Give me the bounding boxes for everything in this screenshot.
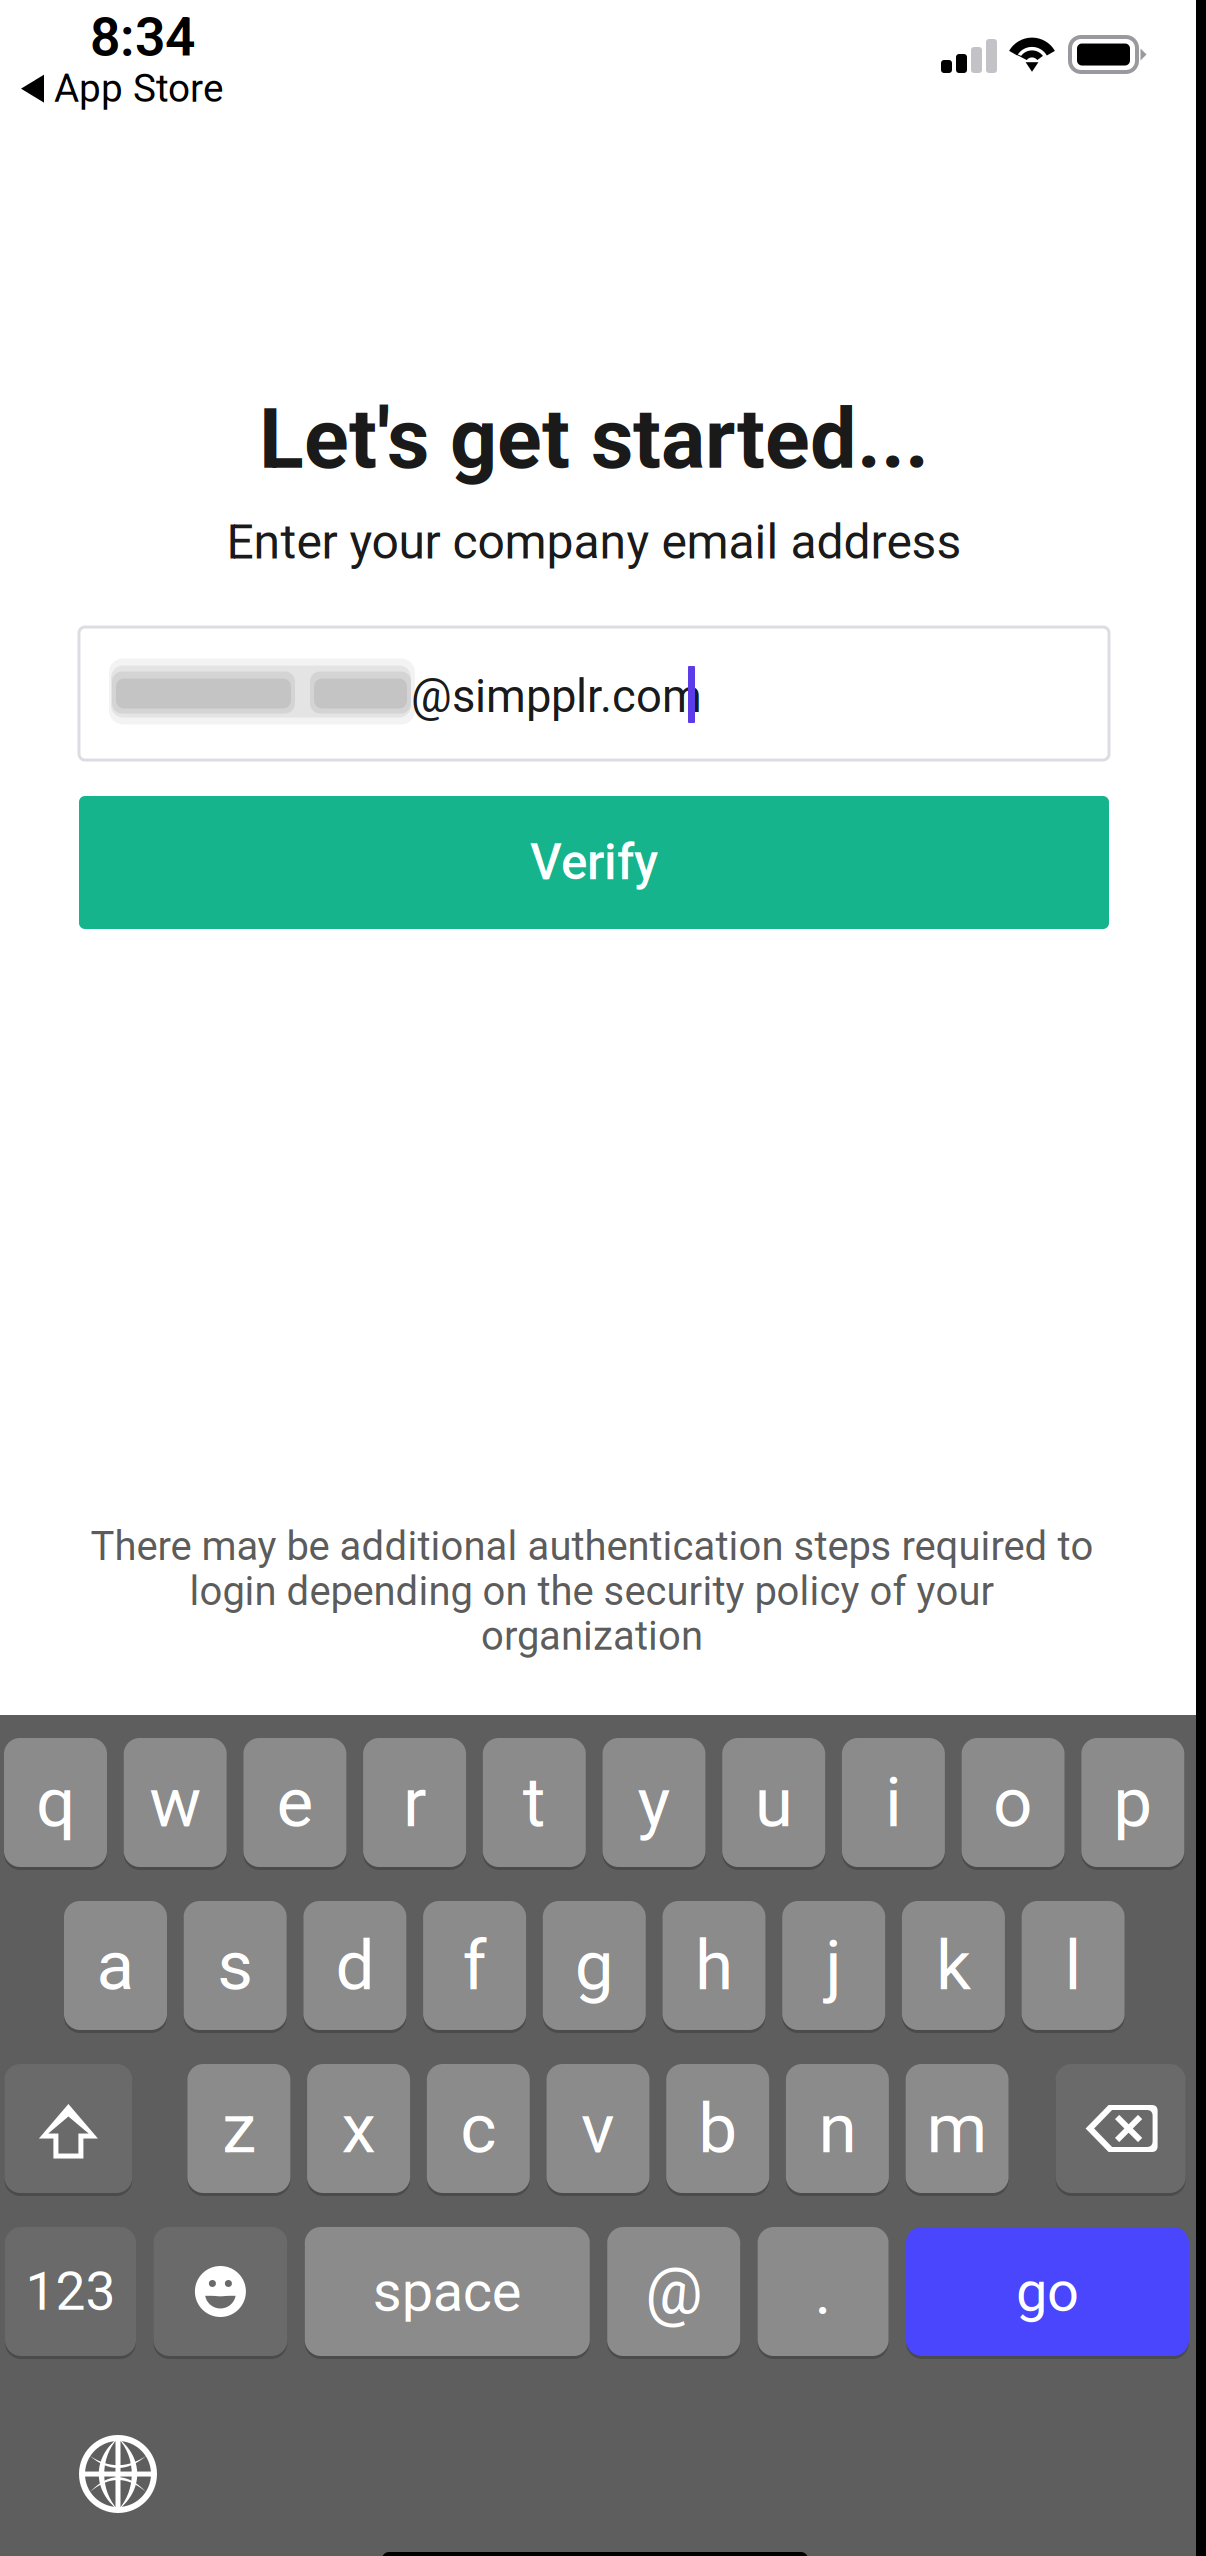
staticText: h [695,1925,733,2006]
staticText: g [575,1925,614,2006]
button[interactable]: z [187,2064,290,2193]
staticText: . [815,2254,832,2329]
staticText: s [217,1925,253,2006]
button[interactable]: y [602,1738,705,1867]
staticText: w [149,1762,201,1843]
staticText: a [96,1925,134,2006]
button[interactable]: 123 [5,2227,136,2356]
button[interactable]: a [64,1901,167,2030]
staticText: 123 [25,2260,115,2323]
button[interactable]: v [546,2064,649,2193]
button[interactable]: @ [607,2227,740,2356]
button[interactable]: w [124,1738,227,1867]
staticText: 8:34 [90,6,195,68]
staticText: d [335,1925,374,2006]
staticText: p [1113,1762,1152,1843]
button[interactable]: s [184,1901,287,2030]
button[interactable]: App Store [0,0,223,61]
button[interactable]: Emoji [153,2227,287,2356]
staticText: l [1065,1925,1082,2006]
staticText: Enter your company email address [226,514,961,570]
button[interactable]: m [906,2064,1009,2193]
button[interactable]: e [243,1738,346,1867]
button[interactable]: d [303,1901,406,2030]
staticText: k [936,1925,971,2006]
button[interactable]: x [307,2064,410,2193]
button[interactable]: space [305,2227,590,2356]
button[interactable]: t [483,1738,586,1867]
staticText: @ [645,2254,702,2329]
staticText: u [755,1762,793,1843]
button[interactable]: p [1081,1738,1184,1867]
staticText: t [523,1762,546,1843]
staticText: r [403,1762,426,1843]
staticText: c [460,2088,496,2169]
staticText: x [342,2088,376,2169]
button[interactable]: f [423,1901,526,2030]
button[interactable]: c [427,2064,530,2193]
staticText: f [463,1925,487,2006]
button[interactable]: . [758,2227,889,2356]
button[interactable]: q [4,1738,107,1867]
staticText: @simpplr.com [411,670,702,723]
button[interactable]: k [902,1901,1005,2030]
button[interactable]: r [363,1738,466,1867]
staticText: m [927,2088,988,2169]
staticText: e [276,1762,313,1843]
button[interactable]: Next keyboard [76,2432,160,2516]
staticText: login depending on the security policy o… [189,1568,994,1615]
staticText: n [818,2088,856,2169]
button[interactable]: @simpplr.com [79,627,1109,760]
staticText: j [825,1925,842,2006]
staticText: q [36,1762,75,1843]
staticText: Let's get started... [259,391,929,488]
button[interactable]: i [842,1738,945,1867]
button[interactable]: go [906,2227,1189,2356]
button[interactable]: Delete [1056,2064,1186,2193]
button[interactable]: u [722,1738,825,1867]
button[interactable]: o [962,1738,1065,1867]
staticText: i [885,1762,902,1843]
staticText: y [637,1762,670,1843]
staticText: o [993,1762,1033,1843]
staticText: organization [481,1613,703,1660]
button[interactable]: g [543,1901,646,2030]
staticText: go [1016,2259,1079,2324]
button[interactable]: Verify [79,796,1109,929]
button[interactable]: n [786,2064,889,2193]
staticText: b [698,2088,737,2169]
staticText: There may be additional authentication s… [90,1523,1093,1570]
button[interactable]: j [782,1901,885,2030]
button[interactable]: l [1022,1901,1125,2030]
staticText: space [373,2259,522,2324]
staticText: v [581,2088,615,2169]
staticText: Verify [530,834,658,891]
staticText: z [222,2088,256,2169]
button[interactable]: Shift [4,2064,132,2193]
button[interactable]: h [662,1901,765,2030]
button[interactable]: b [666,2064,769,2193]
staticText: App Store [54,66,224,111]
